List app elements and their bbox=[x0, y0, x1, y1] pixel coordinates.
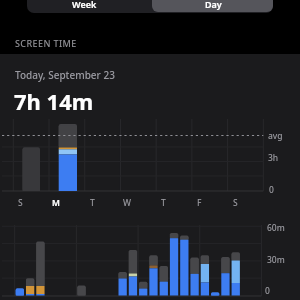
staticText: W bbox=[123, 197, 131, 209]
button[interactable] bbox=[152, 0, 273, 12]
staticText: 30m bbox=[267, 254, 285, 266]
staticText: 3h bbox=[268, 152, 279, 164]
staticText: 60m bbox=[267, 222, 285, 234]
button[interactable]: Week bbox=[54, 0, 114, 13]
staticText: SCREEN TIME bbox=[15, 37, 77, 49]
staticText: F bbox=[197, 197, 202, 209]
staticText: Week bbox=[72, 0, 97, 10]
staticText: 7h 14m bbox=[14, 86, 94, 111]
staticText: Day bbox=[205, 0, 222, 10]
staticText: S bbox=[233, 197, 238, 209]
staticText: T bbox=[161, 197, 166, 209]
staticText: avg bbox=[268, 130, 283, 142]
staticText: S bbox=[18, 197, 23, 209]
button[interactable]: Day bbox=[183, 0, 243, 13]
staticText: 0 bbox=[269, 184, 274, 196]
staticText: T bbox=[90, 197, 95, 209]
staticText: 0 bbox=[265, 285, 270, 297]
staticText: M bbox=[52, 197, 60, 209]
staticText: Today, September 23 bbox=[15, 68, 115, 82]
